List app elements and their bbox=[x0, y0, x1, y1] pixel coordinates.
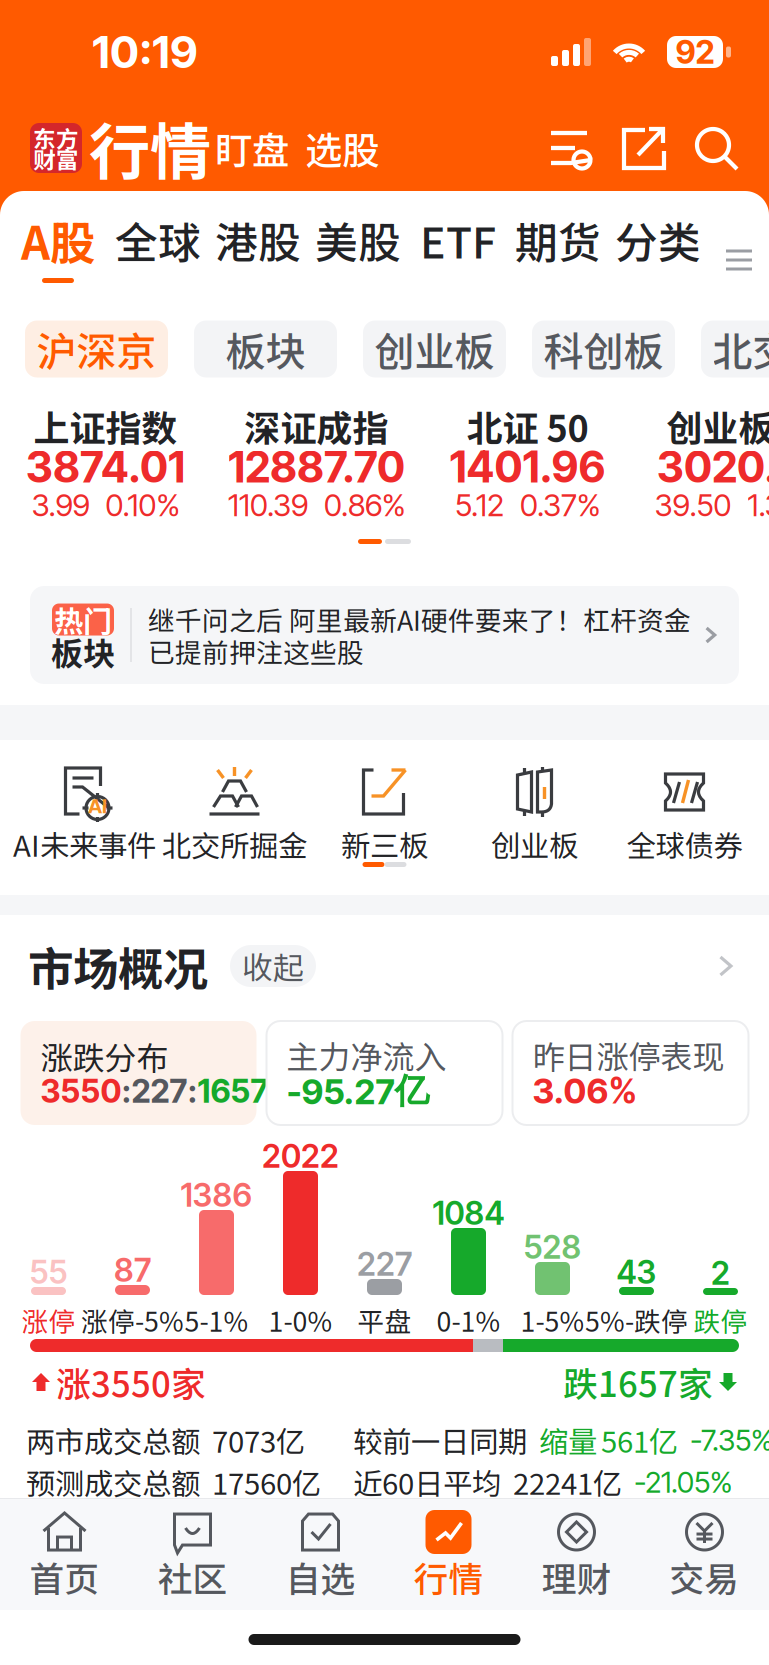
button[interactable]: 沪深京 bbox=[25, 320, 168, 377]
button[interactable]: 涨跌分布 bbox=[20, 1021, 256, 1125]
staticText: ETF bbox=[420, 209, 496, 271]
button[interactable]: 收起 bbox=[230, 945, 316, 987]
button[interactable]: Search bbox=[693, 125, 739, 171]
staticText: 板块 bbox=[51, 628, 115, 675]
staticText: 5.12 bbox=[455, 486, 504, 523]
staticText: 主力净流入 bbox=[286, 1032, 446, 1078]
staticText: 上证指数 bbox=[33, 400, 177, 452]
button[interactable]: 创业板 bbox=[459, 740, 609, 862]
staticText: 227 bbox=[357, 1245, 412, 1283]
staticText: -95.27亿 bbox=[286, 1069, 429, 1113]
button[interactable]: 首页 bbox=[0, 1499, 128, 1610]
staticText: 自选 bbox=[285, 1552, 355, 1602]
staticText: 0.37% bbox=[520, 486, 600, 523]
staticText: 全球 bbox=[115, 209, 201, 271]
staticText: 1386 bbox=[180, 1176, 252, 1214]
button[interactable]: More bbox=[712, 948, 769, 984]
staticText: 社区 bbox=[157, 1552, 227, 1602]
staticText: 1657 bbox=[197, 1072, 268, 1110]
staticText: AI未来事件 bbox=[13, 823, 156, 865]
staticText: 北证 50 bbox=[466, 400, 588, 452]
staticText: 涨停-5% bbox=[81, 1301, 184, 1339]
button[interactable]: 行情 bbox=[384, 1499, 512, 1610]
staticText: 全球债券 bbox=[626, 823, 742, 865]
button[interactable]: 昨日涨停表现 bbox=[512, 1021, 748, 1125]
staticText: 创业板指 bbox=[666, 400, 769, 452]
staticText: 7073亿 bbox=[212, 1419, 305, 1461]
button[interactable]: 北证 50 bbox=[422, 393, 633, 539]
button[interactable]: Share bbox=[621, 125, 667, 171]
staticText: 2 bbox=[711, 1254, 730, 1292]
button[interactable]: AI bbox=[9, 740, 159, 862]
staticText: -7.35% bbox=[690, 1422, 769, 1458]
button[interactable]: 上证指数 bbox=[0, 393, 211, 539]
button[interactable]: 新三板 bbox=[309, 740, 459, 862]
staticText: 理财 bbox=[541, 1552, 611, 1602]
staticText: 2022 bbox=[262, 1137, 339, 1175]
staticText: 市场概况 bbox=[28, 933, 208, 999]
button[interactable]: 分类 bbox=[608, 215, 708, 305]
staticText: 港股 bbox=[215, 209, 301, 271]
staticText: 交易 bbox=[669, 1552, 739, 1602]
staticText: : bbox=[187, 1072, 197, 1110]
staticText: 盯盘 bbox=[215, 121, 289, 175]
button[interactable]: 北交所 bbox=[701, 320, 769, 377]
button[interactable]: 理财 bbox=[512, 1499, 640, 1610]
staticText: 10:19 bbox=[92, 25, 198, 79]
button[interactable]: 北交所掘金 bbox=[159, 740, 309, 862]
staticText: 分类 bbox=[615, 209, 701, 271]
button[interactable]: 盯盘 bbox=[222, 126, 282, 170]
staticText: 较前一日同期 bbox=[353, 1419, 527, 1461]
button[interactable]: 交易 bbox=[640, 1499, 768, 1610]
button[interactable]: 科创板 bbox=[532, 320, 675, 377]
staticText: 首页 bbox=[29, 1552, 99, 1602]
staticText: 3020.91 bbox=[657, 441, 769, 493]
button[interactable]: 自选 bbox=[256, 1499, 384, 1610]
button[interactable]: 全球债券 bbox=[609, 740, 759, 862]
staticText: 财富 bbox=[33, 142, 79, 175]
staticText: A股 bbox=[21, 207, 95, 273]
button[interactable]: 港股 bbox=[208, 215, 308, 305]
button[interactable]: Customize list bbox=[549, 127, 595, 169]
staticText: 528 bbox=[523, 1228, 581, 1266]
staticText: 选股 bbox=[305, 121, 379, 175]
staticText: 110.39 bbox=[228, 486, 308, 523]
staticText: 创业板 bbox=[374, 320, 494, 378]
staticText: 近60日平均 bbox=[353, 1461, 501, 1503]
staticText: 0.86% bbox=[324, 486, 405, 523]
button[interactable]: 全球 bbox=[108, 215, 208, 305]
staticText: 87 bbox=[114, 1251, 151, 1289]
staticText: 两市成交总额 bbox=[26, 1419, 200, 1461]
staticText: 已提前押注这些股 bbox=[148, 632, 364, 670]
staticText: 涨停 bbox=[21, 1301, 75, 1339]
button[interactable]: 创业板 bbox=[363, 320, 506, 377]
staticText: 深证成指 bbox=[244, 400, 388, 452]
button[interactable]: 热门 bbox=[0, 565, 769, 705]
button[interactable]: 板块 bbox=[194, 320, 337, 377]
staticText: 跌1657家 bbox=[563, 1357, 713, 1407]
button[interactable]: 社区 bbox=[128, 1499, 256, 1610]
staticText: 39.50 bbox=[654, 486, 731, 523]
staticText: 北交所掘金 bbox=[162, 823, 307, 865]
button[interactable]: 深证成指 bbox=[211, 393, 422, 539]
staticText: 平盘 bbox=[357, 1301, 411, 1339]
button[interactable]: 创业板指 bbox=[633, 393, 769, 539]
staticText: 5%-跌停 bbox=[585, 1301, 688, 1339]
staticText: 创业板 bbox=[491, 823, 578, 865]
staticText: 板块 bbox=[225, 320, 305, 378]
button[interactable]: 主力净流入 bbox=[266, 1021, 502, 1125]
button[interactable]: 选股 bbox=[312, 126, 372, 170]
button[interactable]: All categories bbox=[709, 215, 769, 305]
button[interactable]: 期货 bbox=[508, 215, 608, 305]
staticText: 沪深京 bbox=[36, 320, 156, 378]
staticText: 55 bbox=[29, 1253, 67, 1291]
staticText: 涨3550家 bbox=[56, 1357, 206, 1407]
staticText: 1084 bbox=[432, 1194, 504, 1232]
staticText: 43 bbox=[616, 1253, 656, 1291]
button[interactable]: 美股 bbox=[308, 215, 408, 305]
button[interactable]: A股 bbox=[8, 215, 108, 305]
staticText: 0.10% bbox=[105, 486, 179, 523]
button[interactable]: ETF bbox=[408, 215, 508, 305]
staticText: 继千问之后 阿里最新AI硬件要来了！杠杆资金 bbox=[148, 600, 691, 638]
staticText: AI bbox=[88, 794, 107, 818]
